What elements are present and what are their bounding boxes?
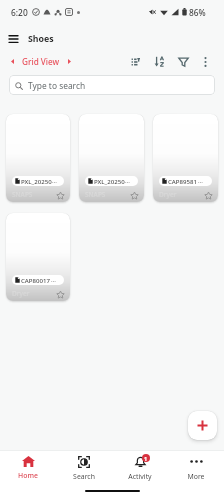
staticText: Dryer xyxy=(159,190,177,199)
staticText: ··· xyxy=(125,177,130,185)
button[interactable]: More xyxy=(168,451,224,485)
button[interactable]: Home xyxy=(0,451,56,485)
staticText: Activity xyxy=(128,472,152,481)
button[interactable]: Favorite xyxy=(55,190,65,200)
button[interactable]: List format xyxy=(122,51,148,72)
staticText: Grid View xyxy=(22,56,60,67)
button[interactable]: Favorite xyxy=(55,289,65,299)
staticText: CAP80017 xyxy=(21,276,51,284)
button[interactable]: Search xyxy=(56,451,112,485)
staticText: ··· xyxy=(198,177,203,185)
staticText: 6:20 xyxy=(11,7,28,18)
button[interactable]: Menu xyxy=(9,30,27,48)
staticText: 86% xyxy=(189,7,206,18)
staticText: Shoes xyxy=(28,33,54,45)
staticText: CAP89581 xyxy=(168,177,198,185)
staticText: Type to search xyxy=(28,80,86,91)
staticText: 1 xyxy=(144,455,148,462)
staticText: SNAPS xyxy=(85,190,106,199)
staticText: Search xyxy=(73,472,95,481)
button[interactable]: Grid View xyxy=(6,54,74,69)
button[interactable]: PXL_20250 xyxy=(6,114,70,202)
button[interactable]: More options xyxy=(195,52,215,71)
button[interactable]: Filter xyxy=(171,51,195,72)
staticText: ··· xyxy=(52,177,57,185)
button[interactable]: Type to search xyxy=(9,75,215,95)
button[interactable]: 1 xyxy=(112,451,168,485)
button[interactable]: PXL_20250 xyxy=(79,114,144,202)
staticText: ··· xyxy=(51,276,56,284)
button[interactable]: Favorite xyxy=(203,190,213,200)
button[interactable]: Favorite xyxy=(129,190,139,200)
button[interactable]: CAP89581 xyxy=(153,114,218,202)
staticText: PXL_20250 xyxy=(21,177,52,185)
staticText: Dryer xyxy=(12,289,30,298)
button[interactable]: Sort xyxy=(148,51,171,72)
button[interactable]: CAP80017 xyxy=(6,213,70,301)
button[interactable]: Add xyxy=(188,411,217,440)
staticText: SNAPS xyxy=(12,190,33,199)
staticText: More xyxy=(187,472,205,481)
staticText: PXL_20250 xyxy=(94,177,125,185)
staticText: Home xyxy=(18,471,38,480)
